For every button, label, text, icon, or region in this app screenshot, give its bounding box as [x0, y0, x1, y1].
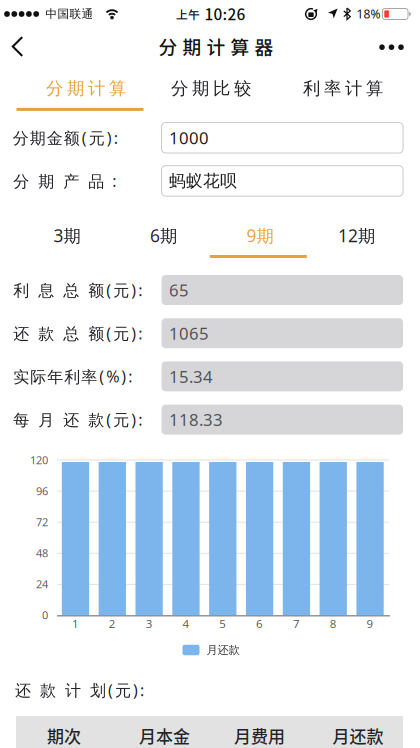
staticText: 蚂蚁花呗 [169, 171, 237, 191]
staticText: 每 月 还 款 ( 元 ) : [13, 409, 142, 430]
staticText: 利 息 总 额 ( 元 ) : [13, 279, 142, 301]
staticText: 18% [356, 6, 380, 22]
staticText: 分 期 产 品 : [13, 170, 116, 191]
staticText: 月还款 [206, 643, 239, 657]
staticText: 72 [36, 515, 48, 529]
staticText: 65 [169, 279, 189, 301]
staticText: 2 [109, 616, 116, 631]
button[interactable]: More [371, 36, 412, 58]
staticText: 分 期 计 算 器 [158, 33, 273, 59]
staticText: 118.33 [169, 408, 223, 431]
staticText: 24 [36, 577, 48, 591]
staticText: 分 期 比 较 [171, 78, 251, 99]
staticText: 96 [36, 484, 48, 498]
staticText: 利 率 计 算 [303, 78, 383, 99]
staticText: 9期 [246, 224, 273, 247]
staticText: 月本金 [139, 723, 190, 747]
staticText: 4 [182, 616, 189, 631]
button[interactable]: 3期 [19, 218, 115, 252]
staticText: 10:26 [204, 3, 245, 24]
staticText: 6期 [150, 224, 177, 247]
button[interactable]: 分 期 比 较 [147, 71, 274, 105]
staticText: 5 [219, 616, 226, 631]
staticText: 分 期 金 额 ( 元 ) : [13, 127, 118, 148]
staticText: 3期 [53, 224, 80, 247]
staticText: 上午 [176, 6, 200, 23]
staticText: 15.34 [169, 365, 213, 387]
staticText: 月还款 [332, 723, 383, 747]
staticText: 分 期 计 算 [46, 78, 126, 99]
staticText: 还 款 总 额 ( 元 ) : [13, 323, 142, 344]
staticText: 6 [256, 616, 263, 631]
staticText: 48 [36, 546, 48, 560]
staticText: 1065 [169, 322, 209, 344]
staticText: 1000 [169, 127, 209, 149]
button[interactable]: 9期 [212, 218, 308, 252]
staticText: 120 [30, 453, 48, 467]
staticText: 中国联通 [45, 7, 93, 21]
button[interactable]: Back [3, 30, 31, 63]
button[interactable]: 6期 [115, 218, 211, 252]
staticText: 0 [42, 608, 48, 622]
staticText: 期次 [47, 723, 81, 747]
staticText: 实 际 年 利 率 ( % ) : [13, 366, 132, 387]
staticText: 3 [146, 616, 153, 631]
staticText: 1 [72, 616, 79, 631]
staticText: 月费用 [234, 723, 285, 747]
button[interactable]: 分 期 计 算 [22, 71, 149, 105]
button[interactable]: 12期 [308, 218, 404, 252]
staticText: 9 [367, 616, 374, 631]
staticText: 7 [293, 616, 300, 631]
staticText: 12期 [338, 224, 375, 247]
staticText: 还 款 计 划 ( 元 ) : [15, 679, 144, 701]
staticText: 8 [330, 616, 337, 631]
button[interactable]: 利 率 计 算 [279, 71, 406, 105]
